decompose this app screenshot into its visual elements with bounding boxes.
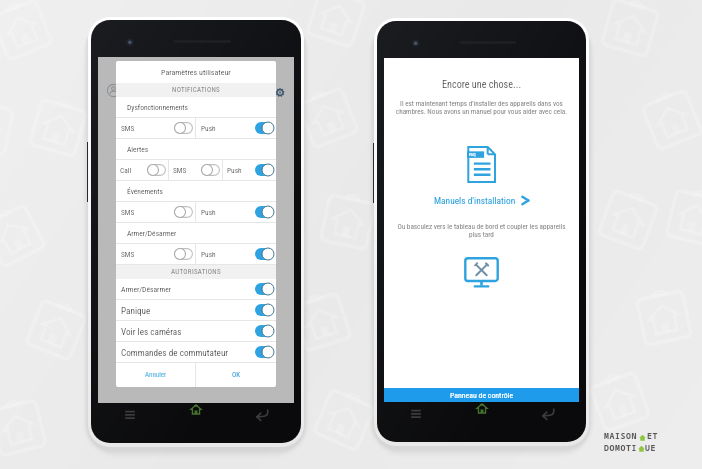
staticText: Armer/Désarmer xyxy=(121,285,172,294)
button[interactable]: Push xyxy=(223,160,276,180)
staticText: Alertes xyxy=(127,145,149,154)
staticText: Call xyxy=(120,166,132,175)
staticText: UE xyxy=(645,442,657,452)
staticText: SMS xyxy=(173,166,187,175)
staticText: DOMOTI xyxy=(604,442,638,452)
staticText: Panique xyxy=(121,305,151,316)
staticText: Commandes de commutateur xyxy=(121,347,229,358)
button[interactable]: Manuels d'installation xyxy=(384,195,579,206)
staticText: SMS xyxy=(121,208,135,217)
staticText: Dysfonctionnements xyxy=(127,103,188,112)
button[interactable]: Tableau de bord xyxy=(464,257,499,288)
staticText: Encore une chose... xyxy=(384,79,579,91)
staticText: Push xyxy=(227,166,242,175)
button[interactable]: Menu xyxy=(408,407,424,421)
button[interactable]: SMS xyxy=(116,202,195,222)
staticText: Ou basculez vers le tableau de bord et c… xyxy=(386,222,577,239)
staticText: Voir les caméras xyxy=(121,326,182,337)
staticText: SMS xyxy=(121,250,135,259)
button[interactable]: Call xyxy=(116,160,168,180)
staticText: Push xyxy=(201,208,216,217)
staticText: NOTIFICATIONS xyxy=(172,86,220,94)
button[interactable]: Home xyxy=(473,403,491,423)
staticText: Annuler xyxy=(145,371,167,379)
staticText: MAISON xyxy=(604,430,638,441)
button[interactable]: OK xyxy=(196,363,276,387)
button[interactable]: Push xyxy=(196,118,276,138)
staticText: Push xyxy=(201,124,216,133)
staticText: Il est maintenant temps d'installer des … xyxy=(387,99,576,116)
staticText: Événements xyxy=(127,187,163,196)
staticText: Armer/Désarmer xyxy=(127,229,177,238)
button[interactable]: SMS xyxy=(116,118,195,138)
staticText: OK xyxy=(232,371,241,379)
button[interactable]: Panneau de contrôle xyxy=(384,388,579,402)
staticText: ET xyxy=(647,430,659,441)
button[interactable]: Push xyxy=(196,202,276,222)
staticText: Push xyxy=(201,250,216,259)
button[interactable]: Armer/Désarmer xyxy=(116,279,276,299)
button[interactable]: Menu xyxy=(122,408,138,422)
button[interactable]: Push xyxy=(196,244,276,264)
button[interactable]: SMS xyxy=(169,160,222,180)
button[interactable]: Back xyxy=(254,407,270,421)
staticText: Panneau de contrôle xyxy=(450,391,514,400)
staticText: FAQ xyxy=(469,152,476,156)
button[interactable]: Panique xyxy=(116,300,276,320)
staticText: SMS xyxy=(121,124,135,133)
button[interactable]: SMS xyxy=(116,244,195,264)
button[interactable]: Commandes de commutateur xyxy=(116,342,276,362)
button[interactable]: Voir les caméras xyxy=(116,321,276,341)
button[interactable]: Home xyxy=(187,404,205,424)
staticText: Manuels d'installation xyxy=(434,195,516,206)
button[interactable]: Annuler xyxy=(116,363,195,387)
button[interactable]: Back xyxy=(540,406,556,420)
staticText: AUTORISATIONS xyxy=(171,268,221,276)
staticText: Paramètres utilisateur xyxy=(161,68,231,77)
